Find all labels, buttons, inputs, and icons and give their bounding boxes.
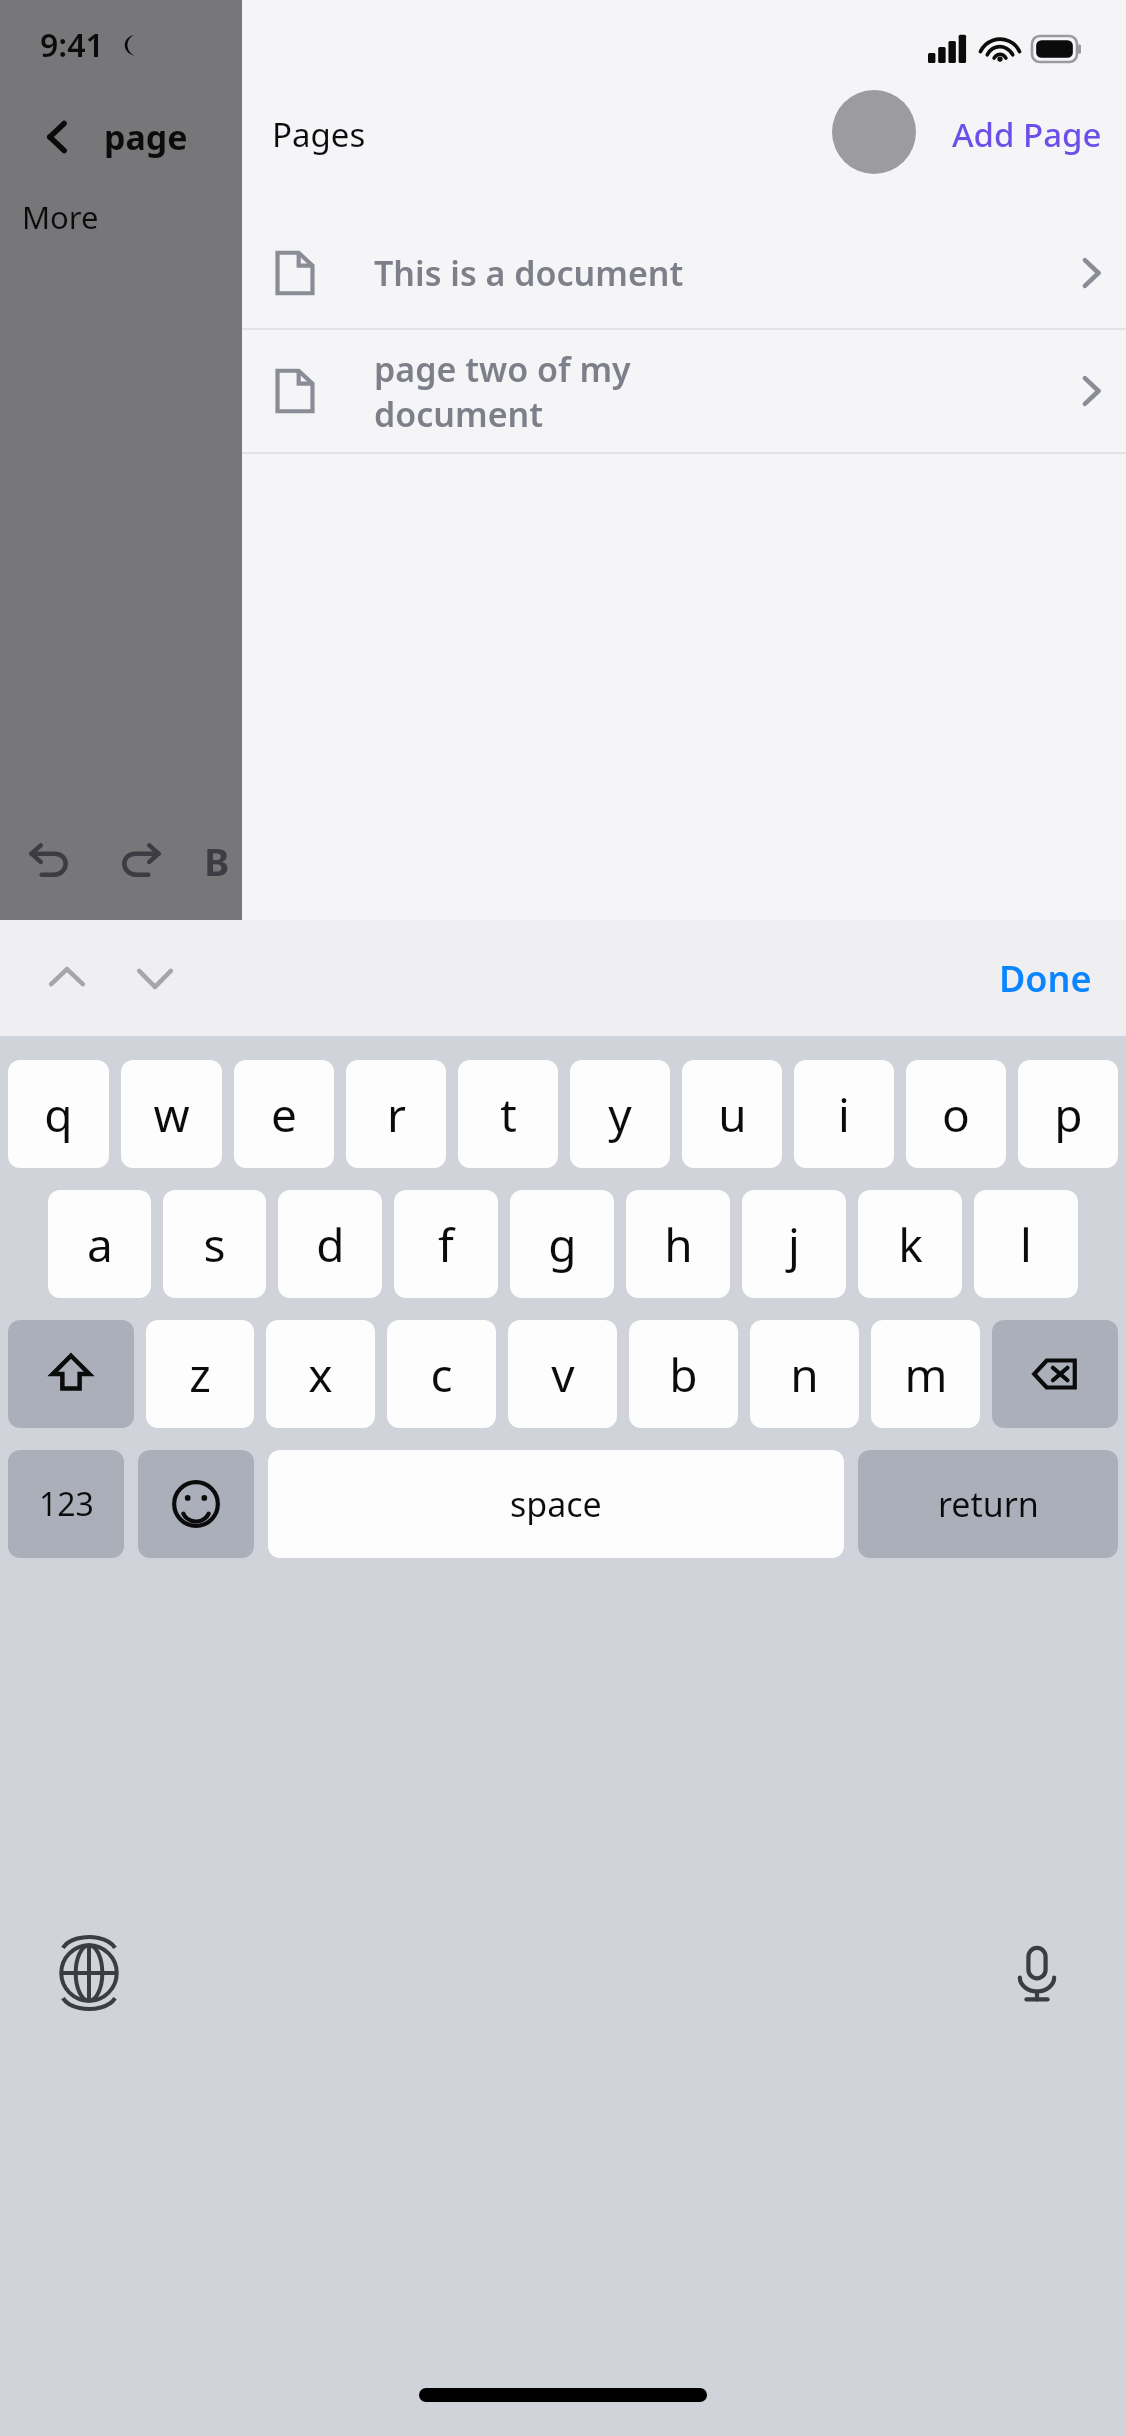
staticText: i bbox=[838, 1083, 850, 1146]
staticText: r bbox=[387, 1083, 406, 1146]
button[interactable]: i bbox=[794, 1060, 894, 1168]
staticText: g bbox=[548, 1213, 577, 1276]
button[interactable]: Backspace bbox=[992, 1320, 1118, 1428]
staticText: 9:41 bbox=[40, 23, 104, 67]
staticText: B bbox=[204, 835, 230, 887]
staticText: j bbox=[788, 1213, 800, 1276]
button[interactable]: o bbox=[906, 1060, 1006, 1168]
button[interactable]: y bbox=[570, 1060, 670, 1168]
staticText: l bbox=[1020, 1213, 1032, 1276]
button[interactable]: m bbox=[871, 1320, 980, 1428]
button[interactable]: s bbox=[163, 1190, 266, 1298]
staticText: page two of my document bbox=[374, 346, 1056, 436]
staticText: x bbox=[308, 1343, 333, 1406]
button[interactable]: e bbox=[234, 1060, 334, 1168]
button[interactable]: f bbox=[394, 1190, 498, 1298]
button[interactable]: return bbox=[858, 1450, 1118, 1558]
button[interactable]: d bbox=[278, 1190, 382, 1298]
button[interactable]: k bbox=[858, 1190, 962, 1298]
staticText: y bbox=[608, 1083, 632, 1146]
button[interactable]: a bbox=[48, 1190, 151, 1298]
staticText: w bbox=[153, 1083, 190, 1146]
staticText: t bbox=[500, 1083, 517, 1146]
staticText: o bbox=[942, 1083, 970, 1146]
button[interactable]: x bbox=[266, 1320, 375, 1428]
button[interactable]: t bbox=[458, 1060, 558, 1168]
button[interactable]: Emoji bbox=[138, 1450, 254, 1558]
button[interactable]: g bbox=[510, 1190, 614, 1298]
button[interactable]: b bbox=[629, 1320, 738, 1428]
staticText: n bbox=[790, 1343, 819, 1406]
staticText: z bbox=[189, 1343, 211, 1406]
button[interactable]: page two of my document bbox=[242, 330, 1126, 452]
staticText: return bbox=[938, 1481, 1039, 1527]
staticText: c bbox=[430, 1343, 453, 1406]
button[interactable]: u bbox=[682, 1060, 782, 1168]
button[interactable]: j bbox=[742, 1190, 846, 1298]
button[interactable]: p bbox=[1018, 1060, 1118, 1168]
button[interactable]: w bbox=[121, 1060, 222, 1168]
staticText: u bbox=[718, 1083, 747, 1146]
staticText: More important document text bbox=[22, 196, 242, 238]
staticText: Pages bbox=[272, 112, 366, 157]
button[interactable]: Redo bbox=[112, 832, 170, 890]
staticText: m bbox=[904, 1343, 948, 1406]
button[interactable]: Change keyboard bbox=[46, 1930, 132, 2016]
staticText: space bbox=[510, 1481, 602, 1527]
staticText: h bbox=[664, 1213, 693, 1276]
button[interactable]: space bbox=[268, 1450, 844, 1558]
button[interactable]: This is a document bbox=[242, 218, 1126, 328]
button[interactable]: h bbox=[626, 1190, 730, 1298]
staticText: p bbox=[1054, 1083, 1083, 1146]
staticText: f bbox=[438, 1213, 454, 1276]
staticText: b bbox=[669, 1343, 698, 1406]
button[interactable]: 123 bbox=[8, 1450, 124, 1558]
button[interactable]: Next field bbox=[122, 945, 188, 1011]
button[interactable]: Previous field bbox=[34, 945, 100, 1011]
button[interactable]: Done bbox=[965, 942, 1126, 1015]
staticText: a bbox=[87, 1213, 113, 1276]
button[interactable]: r bbox=[346, 1060, 446, 1168]
staticText: 123 bbox=[39, 1482, 94, 1526]
button[interactable]: v bbox=[508, 1320, 617, 1428]
button[interactable]: n bbox=[750, 1320, 859, 1428]
staticText: q bbox=[44, 1083, 73, 1146]
button[interactable]: Add Page bbox=[928, 102, 1126, 167]
staticText: Done bbox=[999, 954, 1092, 1003]
staticText: s bbox=[203, 1213, 226, 1276]
staticText: v bbox=[551, 1343, 575, 1406]
button[interactable]: z bbox=[146, 1320, 254, 1428]
staticText: k bbox=[898, 1213, 923, 1276]
button[interactable]: Undo bbox=[20, 832, 78, 890]
staticText: e bbox=[271, 1083, 297, 1146]
button[interactable]: Shift bbox=[8, 1320, 134, 1428]
staticText: Add Page bbox=[952, 112, 1102, 157]
button[interactable]: q bbox=[8, 1060, 109, 1168]
staticText: page two of my document bbox=[104, 114, 242, 160]
button[interactable]: c bbox=[387, 1320, 496, 1428]
button[interactable]: l bbox=[974, 1190, 1078, 1298]
button[interactable]: Dictate bbox=[994, 1930, 1080, 2016]
button[interactable]: Back bbox=[34, 113, 82, 161]
staticText: This is a document bbox=[374, 250, 1056, 296]
staticText: d bbox=[316, 1213, 345, 1276]
